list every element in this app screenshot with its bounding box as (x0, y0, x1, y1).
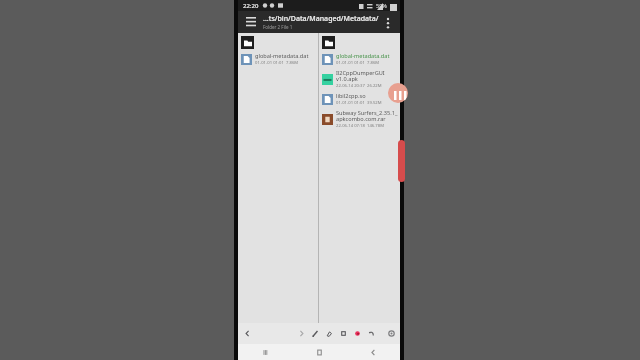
staticText: Il2CppDumperGUI v1.0.apk (336, 69, 398, 83)
staticText: libil2cpp.so (336, 92, 366, 100)
button[interactable]: Floating app shortcut (388, 83, 408, 103)
staticText: 22:20 (243, 2, 259, 10)
staticText: Folder 2 File 1 (263, 24, 293, 30)
button[interactable]: Home (292, 344, 346, 360)
button[interactable]: Recent apps (238, 344, 292, 360)
button[interactable]: Back (346, 344, 400, 360)
button[interactable]: Il2CppDumperGUI v1.0.apk (319, 69, 400, 89)
staticText: 22-06-14 07:18 146.78M (336, 123, 384, 129)
button[interactable]: Previous (238, 323, 256, 344)
staticText: 22-06-14 20:37 26.22M (336, 83, 382, 89)
button[interactable]: global-metadata.dat (319, 49, 400, 69)
button[interactable]: Pen (308, 323, 322, 344)
button[interactable]: Next (294, 323, 308, 344)
staticText: global-metadata.dat (336, 52, 390, 60)
staticText: 01-01-01 01:01 39.52M (336, 100, 382, 106)
button[interactable]: Parent folder (241, 36, 254, 49)
button[interactable]: libil2cpp.so (319, 89, 400, 109)
staticText: 01-01-01 01:01 7.86M (336, 60, 380, 66)
button[interactable]: Open navigation menu (243, 14, 259, 30)
button[interactable]: Color picker (350, 323, 364, 344)
button[interactable]: Shape (336, 323, 350, 344)
staticText: Subway Surfers_2.35.1_apkcombo.com.rar (336, 109, 398, 123)
button[interactable]: Subway Surfers_2.35.1_apkcombo.com.rar (319, 109, 400, 129)
button[interactable]: Highlighter (322, 323, 336, 344)
button[interactable]: Undo (364, 323, 378, 344)
button[interactable]: Recording indicator (398, 140, 405, 182)
button[interactable]: global-metadata.dat (238, 49, 318, 69)
staticText: ...ts/bin/Data/Managed/Metadata/ (263, 14, 379, 24)
staticText: 01-01-01 01:01 7.86M (255, 60, 299, 66)
staticText: 59% (376, 2, 387, 9)
button[interactable]: Settings (382, 323, 400, 344)
staticText: global-metadata.dat (255, 52, 309, 60)
button[interactable]: Parent folder (322, 36, 335, 49)
button[interactable]: More options (381, 15, 395, 29)
